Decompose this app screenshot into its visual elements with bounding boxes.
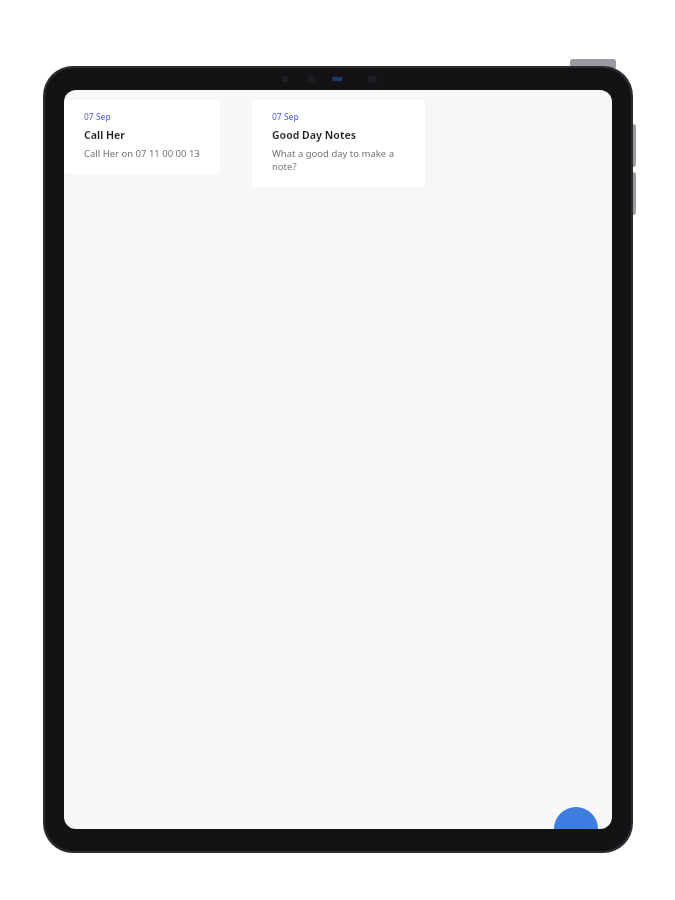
staticText: Call Her (84, 128, 126, 142)
staticText: Call Her on 07 11 00 00 13 (84, 147, 200, 160)
staticText: What a good day to make a note? (272, 147, 412, 173)
staticText: Good Day Notes (272, 128, 356, 142)
staticText: 07 Sep (272, 111, 299, 123)
button[interactable]: 07 Sep (252, 100, 425, 187)
button[interactable]: Add note (554, 807, 598, 829)
staticText: 07 Sep (84, 111, 111, 123)
button[interactable]: 07 Sep (64, 100, 220, 174)
